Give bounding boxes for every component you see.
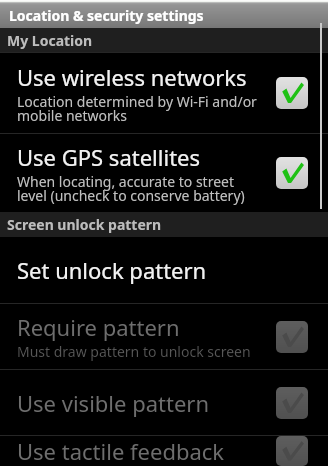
button[interactable]: Use visible pattern <box>0 370 328 435</box>
staticText: Location determined by Wi-Fi and/or mobi… <box>17 92 257 125</box>
staticText: Screen unlock pattern <box>7 215 162 234</box>
staticText: Use wireless networks <box>17 62 247 92</box>
button[interactable]: Require pattern <box>0 304 328 369</box>
staticText: Must draw pattern to unlock screen <box>17 342 251 361</box>
button[interactable]: Use GPS satellites <box>0 134 328 212</box>
button[interactable]: Use tactile feedback <box>0 436 328 466</box>
staticText: My Location <box>7 31 93 50</box>
staticText: Location & security settings <box>9 6 204 25</box>
staticText: Use GPS satellites <box>17 142 201 172</box>
staticText: Set unlock pattern <box>17 255 207 285</box>
staticText: Require pattern <box>17 312 180 342</box>
button[interactable]: Use wireless networks <box>0 53 328 133</box>
staticText: When locating, accurate to street level … <box>17 172 245 205</box>
staticText: Use tactile feedback <box>17 436 225 466</box>
button[interactable]: Set unlock pattern <box>0 237 328 303</box>
staticText: Use visible pattern <box>17 388 209 418</box>
